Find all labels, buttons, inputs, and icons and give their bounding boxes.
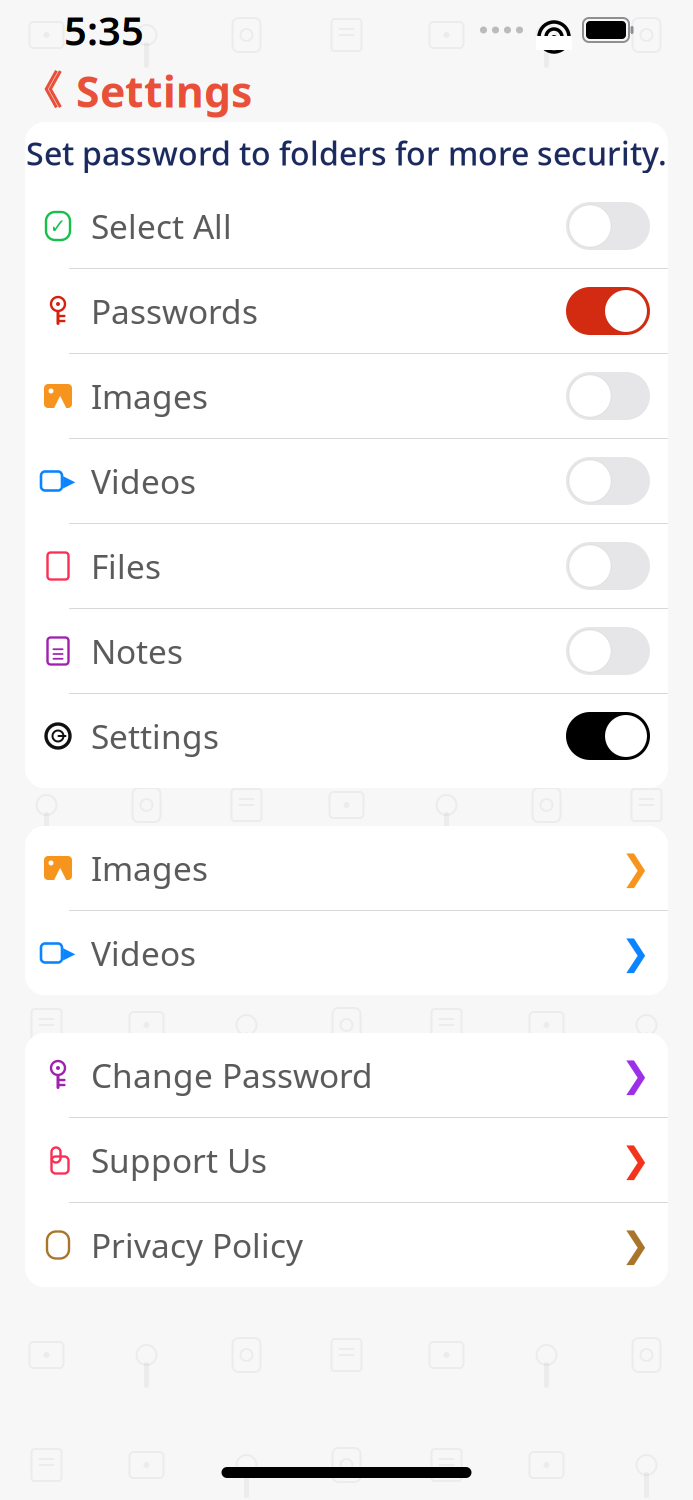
- button[interactable]: Back to Settings: [0, 60, 693, 122]
- staticText: Notes: [91, 629, 183, 673]
- button[interactable]: Privacy Policy: [25, 1203, 668, 1287]
- button[interactable]: Files: [25, 524, 668, 608]
- staticText: Change Password: [91, 1053, 373, 1097]
- staticText: Settings: [91, 714, 219, 758]
- staticText: ❯: [621, 1140, 650, 1180]
- staticText: Videos: [91, 459, 196, 503]
- staticText: ❯: [621, 933, 650, 973]
- staticText: Select All: [91, 204, 232, 248]
- button[interactable]: ✓: [25, 184, 668, 268]
- button[interactable]: Notes: [25, 609, 668, 693]
- button[interactable]: ▲: [25, 826, 668, 910]
- button[interactable]: Support Us: [25, 1118, 668, 1202]
- staticText: ❯: [621, 1055, 650, 1095]
- staticText: Set password to folders for more securit…: [26, 132, 667, 174]
- staticText: Files: [91, 544, 161, 588]
- button[interactable]: Settings: [25, 694, 668, 778]
- staticText: ▲: [53, 391, 66, 411]
- button[interactable]: ▶: [25, 911, 668, 995]
- staticText: ❯: [621, 848, 650, 888]
- button[interactable]: ▲: [25, 354, 668, 438]
- staticText: Privacy Policy: [91, 1223, 303, 1267]
- staticText: 《: [22, 66, 62, 115]
- staticText: ✓: [49, 215, 66, 237]
- staticText: Videos: [91, 931, 196, 975]
- staticText: ▶: [63, 944, 75, 962]
- staticText: Passwords: [91, 289, 258, 333]
- staticText: ❯: [621, 1225, 650, 1265]
- button[interactable]: Change Password: [25, 1033, 668, 1117]
- staticText: 5:35: [64, 3, 144, 56]
- staticText: Support Us: [91, 1138, 267, 1182]
- button[interactable]: Passwords: [25, 269, 668, 353]
- staticText: Images: [91, 846, 208, 890]
- staticText: Settings: [76, 63, 252, 119]
- staticText: Images: [91, 374, 208, 418]
- button[interactable]: ▶: [25, 439, 668, 523]
- staticText: ▶: [63, 472, 75, 490]
- staticText: ▲: [53, 863, 66, 883]
